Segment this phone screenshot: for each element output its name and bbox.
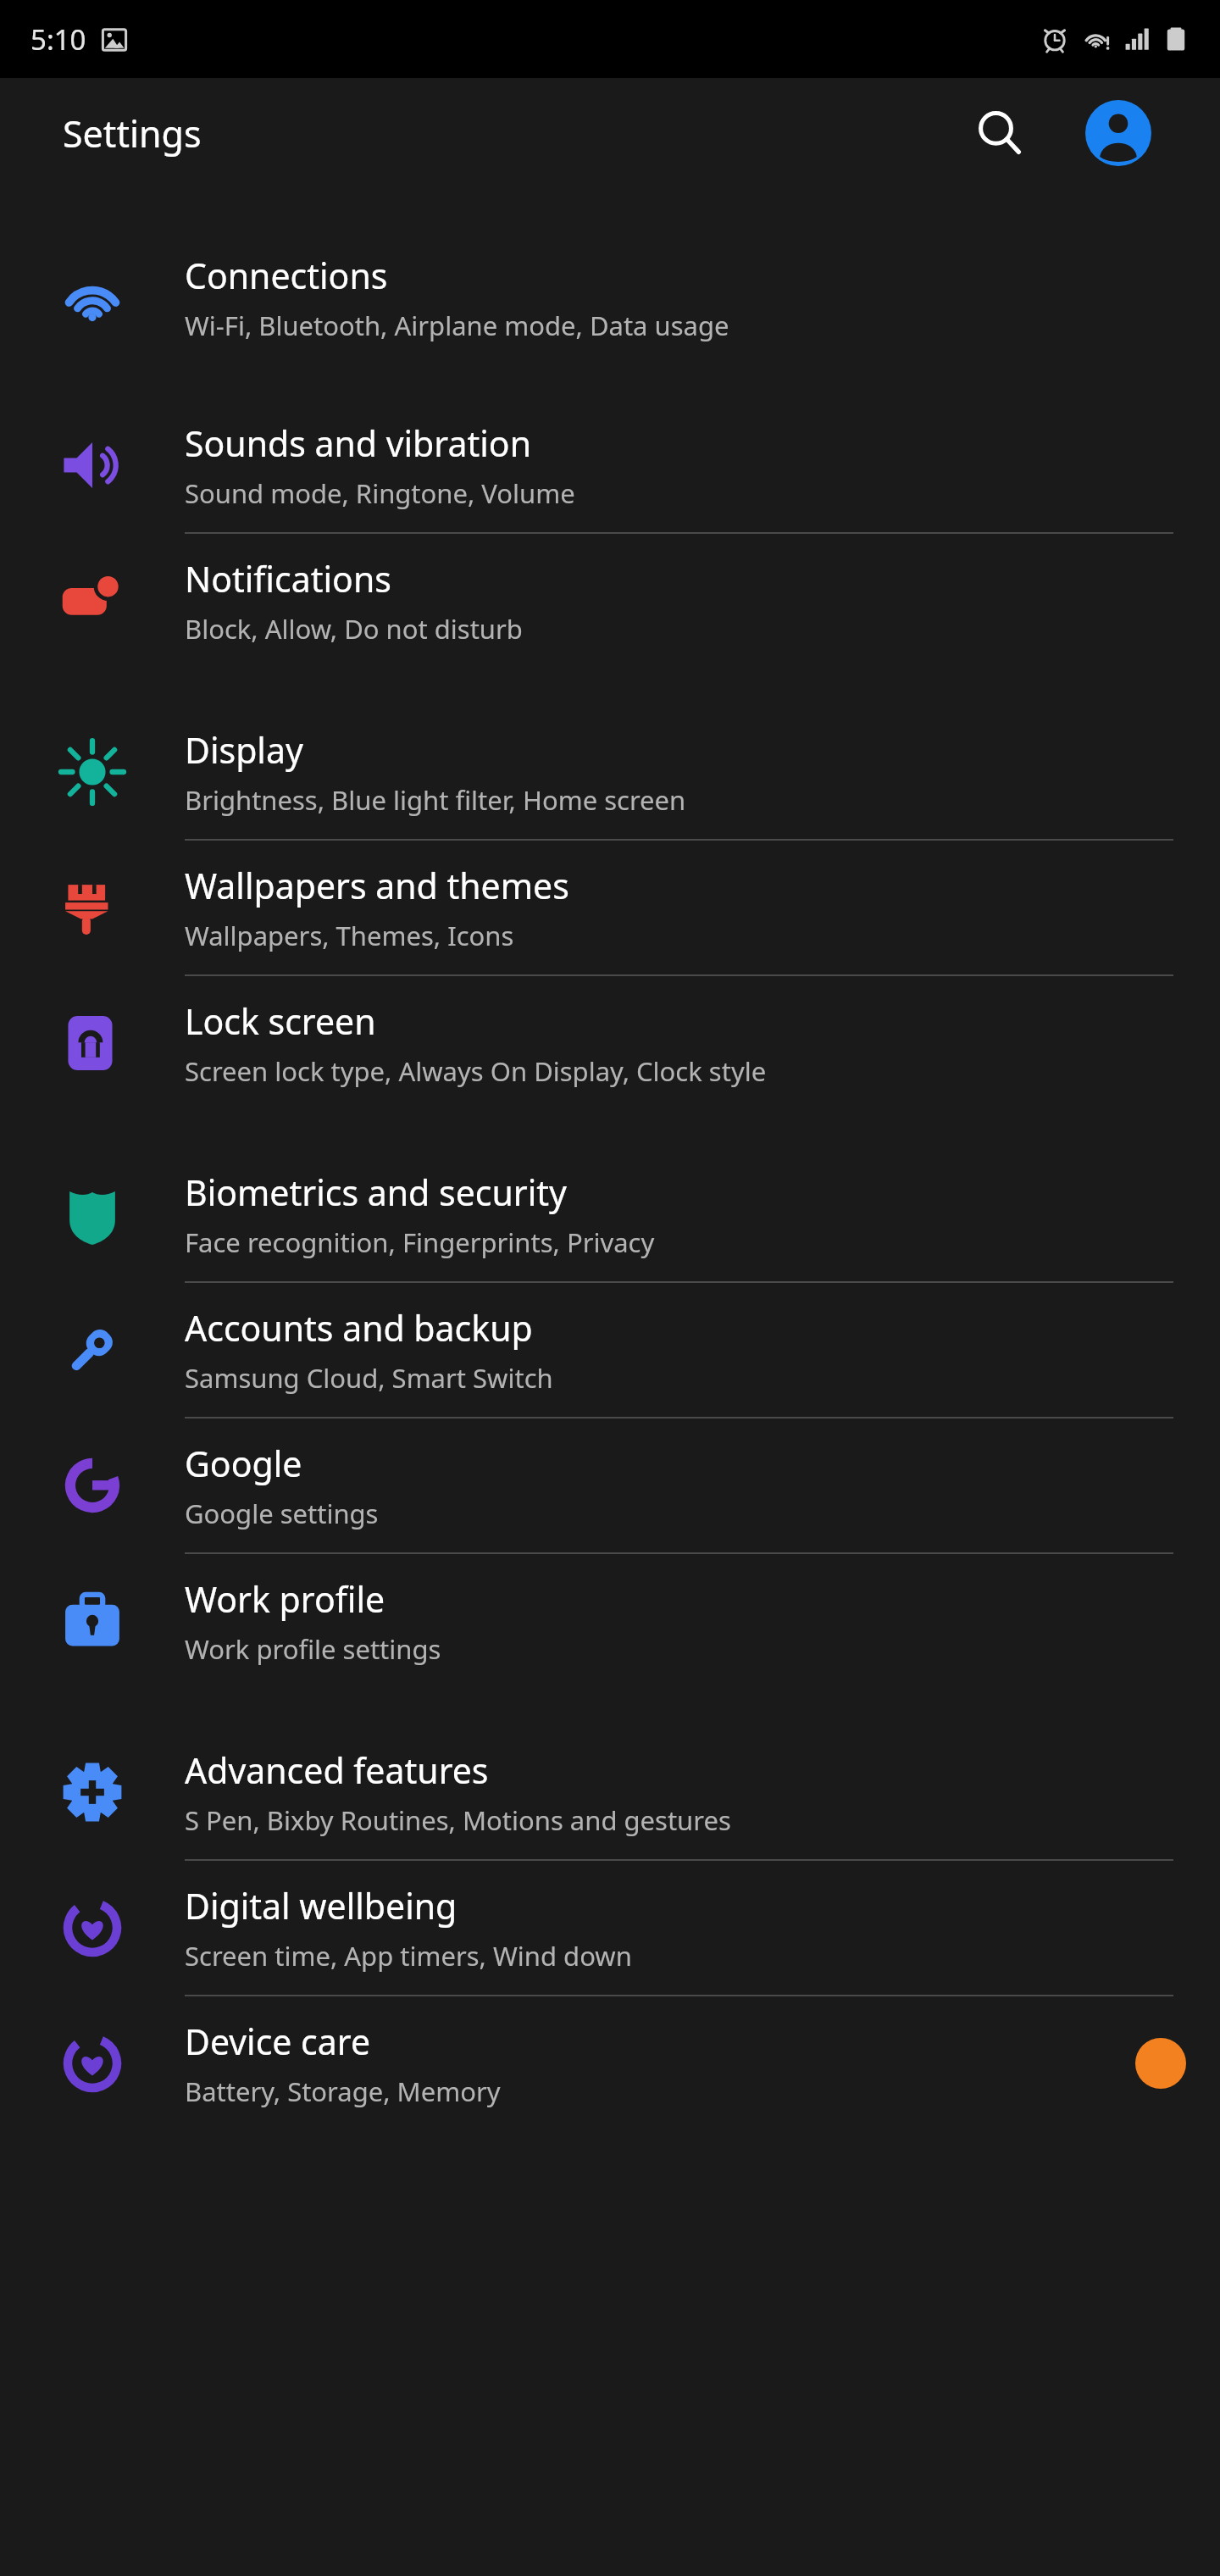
staticText: Battery, Storage, Memory xyxy=(185,2074,501,2109)
staticText: 5:10 xyxy=(30,20,86,58)
staticText: Sound mode, Ringtone, Volume xyxy=(185,475,575,511)
button[interactable]: Lock screen xyxy=(0,976,1220,1110)
staticText: Wallpapers, Themes, Icons xyxy=(185,918,514,953)
staticText: Face recognition, Fingerprints, Privacy xyxy=(185,1224,655,1260)
button[interactable]: Display xyxy=(0,705,1220,839)
button[interactable]: Search xyxy=(959,92,1040,174)
button[interactable]: Device care xyxy=(0,1996,1220,2130)
button[interactable]: Google xyxy=(0,1418,1220,1552)
button[interactable]: Notifications xyxy=(0,534,1220,668)
staticText: Screen lock type, Always On Display, Clo… xyxy=(185,1053,767,1089)
button[interactable]: Connections xyxy=(0,230,1220,364)
staticText: Google settings xyxy=(185,1496,379,1531)
button[interactable]: Work profile xyxy=(0,1554,1220,1688)
button[interactable]: Advanced features xyxy=(0,1725,1220,1859)
staticText: Block, Allow, Do not disturb xyxy=(185,611,523,647)
staticText: Brightness, Blue light filter, Home scre… xyxy=(185,782,686,818)
button[interactable]: Digital wellbeing xyxy=(0,1861,1220,1995)
staticText: Screen time, App timers, Wind down xyxy=(185,1938,632,1974)
button[interactable]: Sounds and vibration xyxy=(0,398,1220,532)
staticText: Work profile settings xyxy=(185,1631,441,1667)
staticText: S Pen, Bixby Routines, Motions and gestu… xyxy=(185,1802,731,1838)
staticText: Accounts and backup xyxy=(185,1304,533,1352)
staticText: Digital wellbeing xyxy=(185,1882,457,1929)
staticText: Samsung Cloud, Smart Switch xyxy=(185,1360,553,1396)
button[interactable]: Wallpapers and themes xyxy=(0,841,1220,974)
staticText: Display xyxy=(185,726,303,774)
staticText: Work profile xyxy=(185,1575,385,1623)
staticText: Connections xyxy=(185,252,388,299)
staticText: Notifications xyxy=(185,555,391,602)
staticText: Google xyxy=(185,1440,302,1487)
staticText: Lock screen xyxy=(185,997,376,1045)
staticText: Biometrics and security xyxy=(185,1169,567,1216)
button[interactable]: Biometrics and security xyxy=(0,1147,1220,1281)
staticText: Settings xyxy=(63,108,202,158)
staticText: Wallpapers and themes xyxy=(185,862,569,909)
staticText: Sounds and vibration xyxy=(185,419,531,467)
staticText: Device care xyxy=(185,2018,371,2065)
button[interactable]: Account xyxy=(1078,92,1159,174)
staticText: Advanced features xyxy=(185,1746,489,1794)
button[interactable]: Accounts and backup xyxy=(0,1283,1220,1417)
staticText: Wi-Fi, Bluetooth, Airplane mode, Data us… xyxy=(185,308,729,343)
